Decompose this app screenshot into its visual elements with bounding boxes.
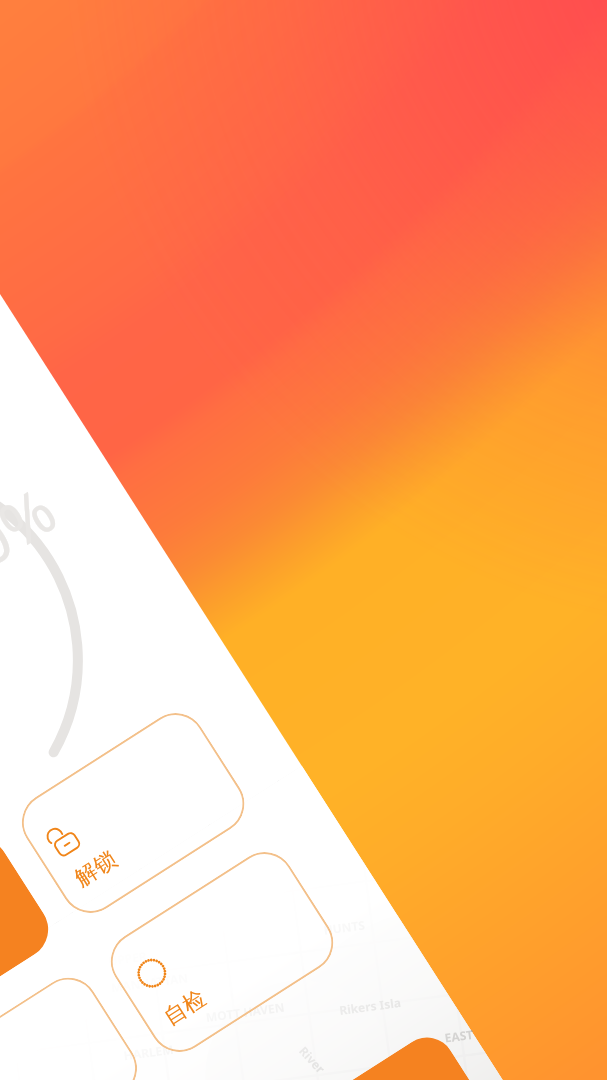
staticText: River: [294, 1040, 330, 1079]
staticText: 自检: [159, 984, 211, 1032]
staticText: 解锁: [70, 845, 122, 893]
staticText: UPPER: [101, 934, 154, 982]
button[interactable]: Air conditioning: [0, 827, 60, 1050]
staticText: Rikers Isla: [332, 971, 408, 1040]
button[interactable]: Self check: [99, 841, 345, 1063]
staticText: MOTT HAVEN: [199, 970, 291, 1053]
staticText: EAST: [438, 1015, 480, 1056]
staticText: MANHATTAN: [104, 941, 195, 1023]
button[interactable]: Unlock: [10, 702, 256, 924]
staticText: HUNTS: [317, 901, 372, 953]
staticText: 100%: [0, 468, 71, 623]
button[interactable]: Climate: [0, 966, 148, 1080]
staticText: HARLEM: [117, 1022, 181, 1080]
button[interactable]: 返回团结: [75, 1027, 487, 1080]
